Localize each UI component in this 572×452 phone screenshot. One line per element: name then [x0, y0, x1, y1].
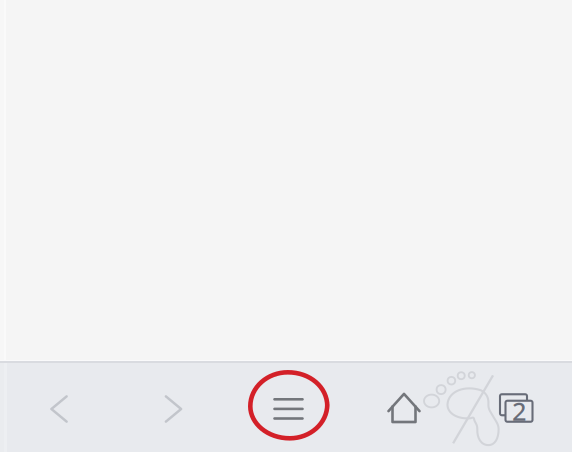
button[interactable]: Menu: [244, 370, 332, 448]
button[interactable]: Private browsing: [420, 372, 502, 450]
button[interactable]: Home: [376, 373, 432, 443]
button[interactable]: Forward: [140, 374, 206, 444]
button[interactable]: Back: [26, 374, 92, 444]
button[interactable]: Tabs — 2 open: [489, 373, 543, 443]
staticText: 2: [512, 394, 526, 428]
